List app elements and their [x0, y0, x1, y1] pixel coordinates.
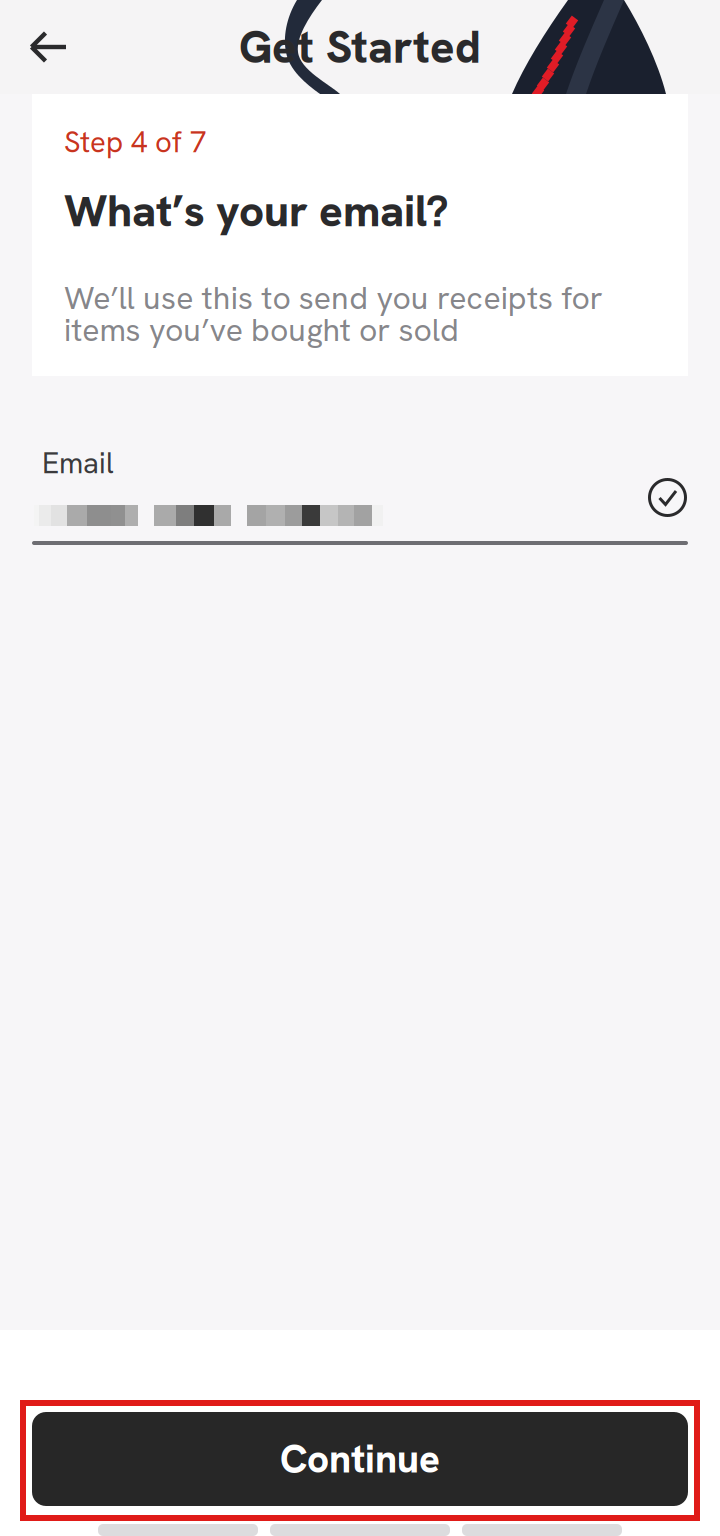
button[interactable]: Continue — [32, 1412, 688, 1506]
staticText: Email — [42, 444, 114, 482]
button[interactable]: Back — [11, 0, 85, 94]
staticText: We’ll use this to send you receipts for — [64, 277, 603, 319]
staticText: items you’ve bought or sold — [64, 309, 459, 351]
staticText: Continue — [280, 1434, 440, 1484]
staticText: Get Started — [239, 17, 481, 77]
staticText: What’s your email? — [64, 182, 449, 240]
staticText: Step 4 of 7 — [64, 123, 206, 161]
